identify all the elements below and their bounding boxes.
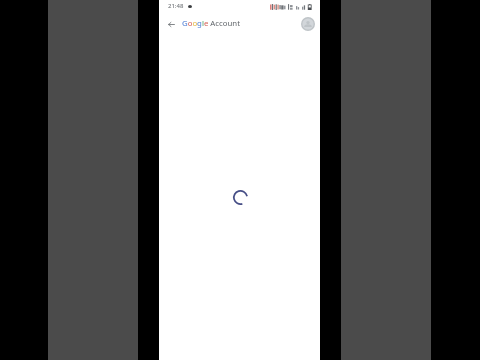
button[interactable]: Google Account profile xyxy=(299,15,317,33)
button[interactable]: Navigate up xyxy=(164,17,178,31)
staticText: Google Account xyxy=(182,18,240,29)
staticText: 21:48 xyxy=(168,2,184,10)
